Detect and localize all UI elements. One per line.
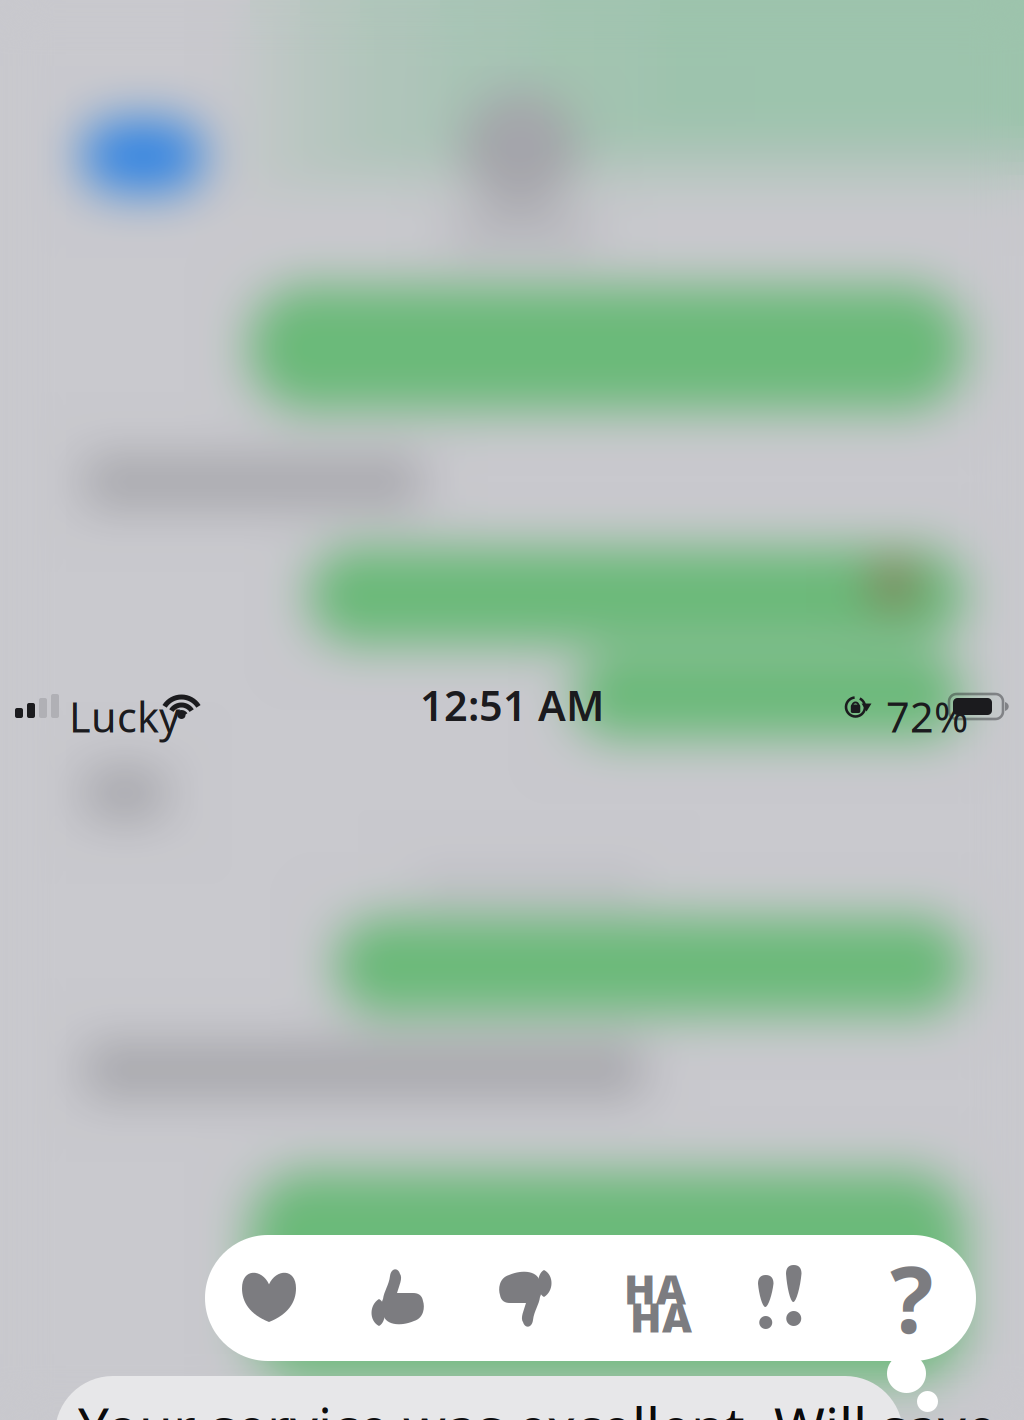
staticText: HA	[624, 1261, 686, 1316]
button[interactable]: Thumbs down	[461, 1235, 591, 1361]
staticText: 12:51 AM	[420, 678, 604, 732]
button[interactable]: Thumbs up	[333, 1235, 461, 1361]
button[interactable]: Question mark	[847, 1235, 976, 1361]
button[interactable]: Love	[205, 1235, 333, 1361]
staticText: Lucky	[69, 689, 180, 744]
button[interactable]: Exclamation	[719, 1235, 847, 1361]
staticText: Your service was excellent. Will save	[78, 1390, 997, 1420]
staticText: ?	[890, 1238, 933, 1358]
button[interactable]: Haha	[591, 1235, 719, 1361]
staticText: 72%	[886, 689, 968, 744]
staticText: HA	[630, 1289, 692, 1344]
